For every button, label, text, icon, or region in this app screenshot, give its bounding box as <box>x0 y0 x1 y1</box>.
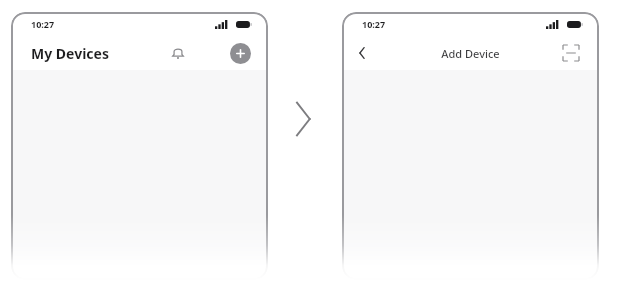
button[interactable]: Scan QR code <box>559 41 583 65</box>
button[interactable]: Back <box>350 41 374 65</box>
staticText: 10:27 <box>31 18 55 30</box>
button[interactable]: Notifications <box>165 40 191 66</box>
staticText: Add Device <box>441 46 500 61</box>
button[interactable]: Add device <box>230 43 251 64</box>
staticText: 10:27 <box>362 18 386 30</box>
staticText: My Devices <box>31 44 109 63</box>
